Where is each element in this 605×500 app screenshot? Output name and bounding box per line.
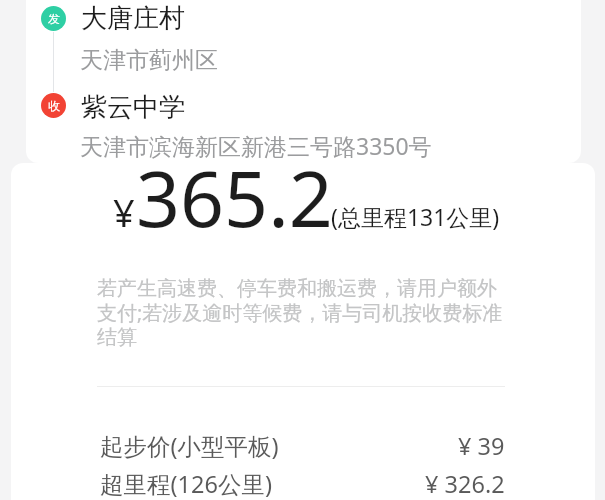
- staticText: ¥ 326.2: [425, 468, 505, 500]
- button[interactable]: [26, 0, 581, 163]
- staticText: 365.2: [136, 145, 333, 250]
- staticText: 天津市蓟州区: [80, 46, 218, 75]
- staticText: 起步价(小型平板): [100, 430, 279, 462]
- staticText: ¥ 39: [458, 430, 505, 462]
- staticText: 天津市滨海新区新港三号路3350号: [80, 130, 432, 161]
- staticText: 若产生高速费、停车费和搬运费，请用户额外支付;若涉及逾时等候费，请与司机按收费标…: [97, 276, 509, 350]
- staticText: 发: [48, 11, 60, 26]
- button[interactable]: 超里程(126公里): [100, 468, 505, 500]
- staticText: 超里程(126公里): [100, 468, 272, 500]
- button[interactable]: 起步价(小型平板): [100, 430, 505, 462]
- staticText: 紫云中学: [81, 91, 185, 124]
- staticText: ¥: [113, 186, 135, 238]
- button[interactable]: 收货地: [41, 93, 66, 118]
- staticText: (总里程131公里): [331, 201, 500, 232]
- staticText: 大唐庄村: [81, 2, 185, 35]
- button[interactable]: 发货地: [41, 6, 66, 31]
- staticText: 收: [48, 98, 60, 113]
